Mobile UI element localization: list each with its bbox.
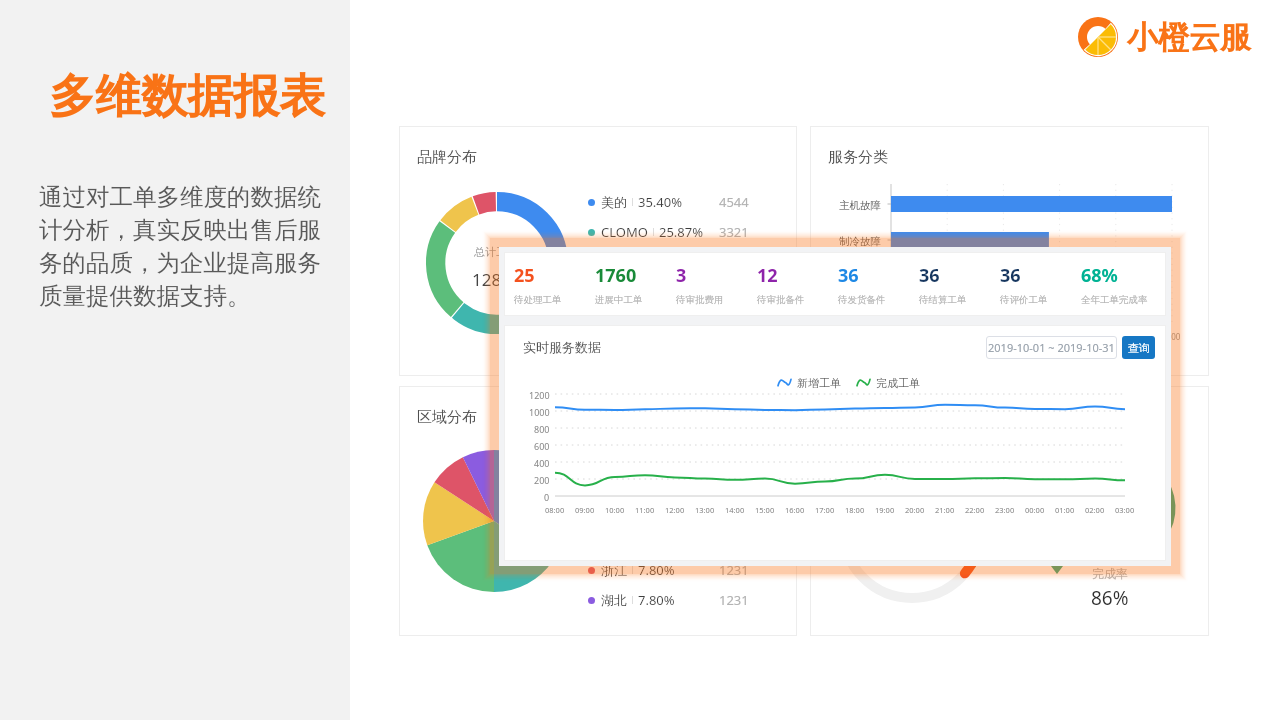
button[interactable]: 小橙云服 logo bbox=[1078, 17, 1251, 57]
button[interactable]: 服务分类 bbox=[810, 126, 1209, 376]
staticText: 10.10% bbox=[638, 283, 683, 301]
button[interactable]: 海尔 bbox=[588, 277, 749, 307]
button[interactable]: 广东 bbox=[588, 435, 749, 465]
staticText: 23:00 bbox=[995, 505, 1015, 515]
staticText: 待评价工单 bbox=[1000, 294, 1048, 306]
staticText: 3 bbox=[676, 263, 687, 288]
button[interactable]: 12 bbox=[757, 263, 838, 306]
button[interactable]: 湖北 bbox=[588, 585, 749, 615]
staticText: 7.80% bbox=[651, 313, 688, 331]
staticText: 山东 bbox=[601, 502, 627, 518]
staticText: 浙江 bbox=[601, 562, 627, 578]
staticText: 实时服务数据 bbox=[523, 339, 601, 355]
staticText: 进展中工单 bbox=[595, 294, 643, 306]
staticText: 12 bbox=[757, 263, 778, 288]
staticText: 3000 bbox=[1050, 331, 1069, 342]
staticText: 25.87% bbox=[638, 471, 683, 489]
staticText: 10:00 bbox=[605, 505, 625, 515]
staticText: 1544 bbox=[719, 283, 749, 301]
staticText: 美的 bbox=[601, 194, 627, 210]
staticText: 查询 bbox=[1128, 341, 1150, 355]
staticText: 区域分布 bbox=[417, 408, 477, 427]
button[interactable]: 25 bbox=[514, 263, 595, 306]
staticText: 5000 bbox=[1162, 331, 1181, 342]
staticText: 09:00 bbox=[575, 505, 595, 515]
staticText: 2000 bbox=[994, 331, 1013, 342]
button[interactable]: 区域分布 bbox=[399, 386, 797, 636]
staticText: 奥克斯 bbox=[601, 314, 640, 330]
button[interactable]: 36 bbox=[1000, 263, 1081, 306]
staticText: 1760 bbox=[595, 263, 637, 288]
staticText: 品牌分布 bbox=[417, 148, 477, 167]
staticText: 17:00 bbox=[815, 505, 835, 515]
staticText: 服务分类 bbox=[828, 148, 888, 167]
staticText: 主机故障 bbox=[839, 199, 881, 212]
staticText: 1231 bbox=[719, 561, 749, 579]
button[interactable]: 2019-10-01 ~ 2019-10-31 bbox=[986, 336, 1117, 359]
staticText: 14:00 bbox=[725, 505, 745, 515]
staticText: 03:00 bbox=[1115, 505, 1135, 515]
button[interactable]: 3 bbox=[676, 263, 757, 306]
button[interactable]: 江苏 bbox=[588, 465, 749, 495]
staticText: 600 bbox=[534, 440, 550, 452]
staticText: 新增工单 bbox=[797, 376, 841, 390]
staticText: 多维数据报表 bbox=[49, 68, 325, 126]
button[interactable]: 奥克斯 bbox=[588, 307, 749, 337]
staticText: 7.80% bbox=[638, 561, 675, 579]
button[interactable]: 36 bbox=[838, 263, 919, 306]
staticText: 20:00 bbox=[905, 505, 925, 515]
button[interactable]: 山东 bbox=[588, 495, 749, 525]
staticText: CLOMO bbox=[601, 223, 648, 241]
staticText: 工单统计 bbox=[828, 408, 888, 427]
staticText: 36 bbox=[1000, 263, 1021, 288]
button[interactable]: 36 bbox=[919, 263, 1000, 306]
button[interactable]: 68% bbox=[1081, 263, 1162, 306]
staticText: 36 bbox=[919, 263, 940, 288]
staticText: 19:00 bbox=[875, 505, 895, 515]
staticText: 13:00 bbox=[695, 505, 715, 515]
staticText: 22:00 bbox=[965, 505, 985, 515]
button[interactable]: 格力 bbox=[588, 247, 749, 277]
staticText: 通过对工单多维度的数据统计分析，真实反映出售后服务的品质，为企业提高服务质量提供… bbox=[39, 182, 323, 311]
button[interactable]: 品牌分布 bbox=[399, 126, 797, 376]
staticText: 25.87% bbox=[659, 223, 704, 241]
button[interactable]: 美的 bbox=[588, 187, 749, 217]
staticText: 格力 bbox=[601, 254, 627, 270]
staticText: 1231 bbox=[719, 313, 749, 331]
button[interactable]: 浙江 bbox=[588, 555, 749, 585]
staticText: 12:00 bbox=[665, 505, 685, 515]
button[interactable]: 1760 bbox=[595, 263, 676, 306]
staticText: 15:00 bbox=[755, 505, 775, 515]
staticText: 待审批备件 bbox=[757, 294, 805, 306]
staticText: 1200 bbox=[529, 389, 550, 401]
staticText: 200 bbox=[534, 474, 550, 486]
staticText: 完成工单 bbox=[876, 376, 920, 390]
staticText: 18:00 bbox=[845, 505, 865, 515]
staticText: 16:00 bbox=[785, 505, 805, 515]
staticText: 2019-10-01 ~ 2019-10-31 bbox=[988, 340, 1115, 355]
staticText: 4000 bbox=[1106, 331, 1125, 342]
staticText: 12865 bbox=[472, 268, 521, 291]
button[interactable]: 工单统计 bbox=[810, 386, 1209, 636]
button[interactable]: 查询 bbox=[1122, 336, 1155, 359]
button[interactable]: CLOMO bbox=[588, 217, 749, 247]
staticText: 待审批费用 bbox=[676, 294, 724, 306]
staticText: 35.40% bbox=[638, 441, 683, 459]
staticText: 待结算工单 bbox=[919, 294, 967, 306]
staticText: 01:00 bbox=[1055, 505, 1075, 515]
staticText: 待处理工单 bbox=[514, 294, 562, 306]
staticText: 2211 bbox=[719, 501, 749, 519]
staticText: 湖北 bbox=[601, 592, 627, 608]
staticText: 36 bbox=[838, 263, 859, 288]
staticText: 广东 bbox=[601, 442, 627, 458]
staticText: 全年工单完成率 bbox=[1081, 294, 1148, 306]
staticText: 00:00 bbox=[1025, 505, 1045, 515]
staticText: 400 bbox=[534, 457, 550, 469]
